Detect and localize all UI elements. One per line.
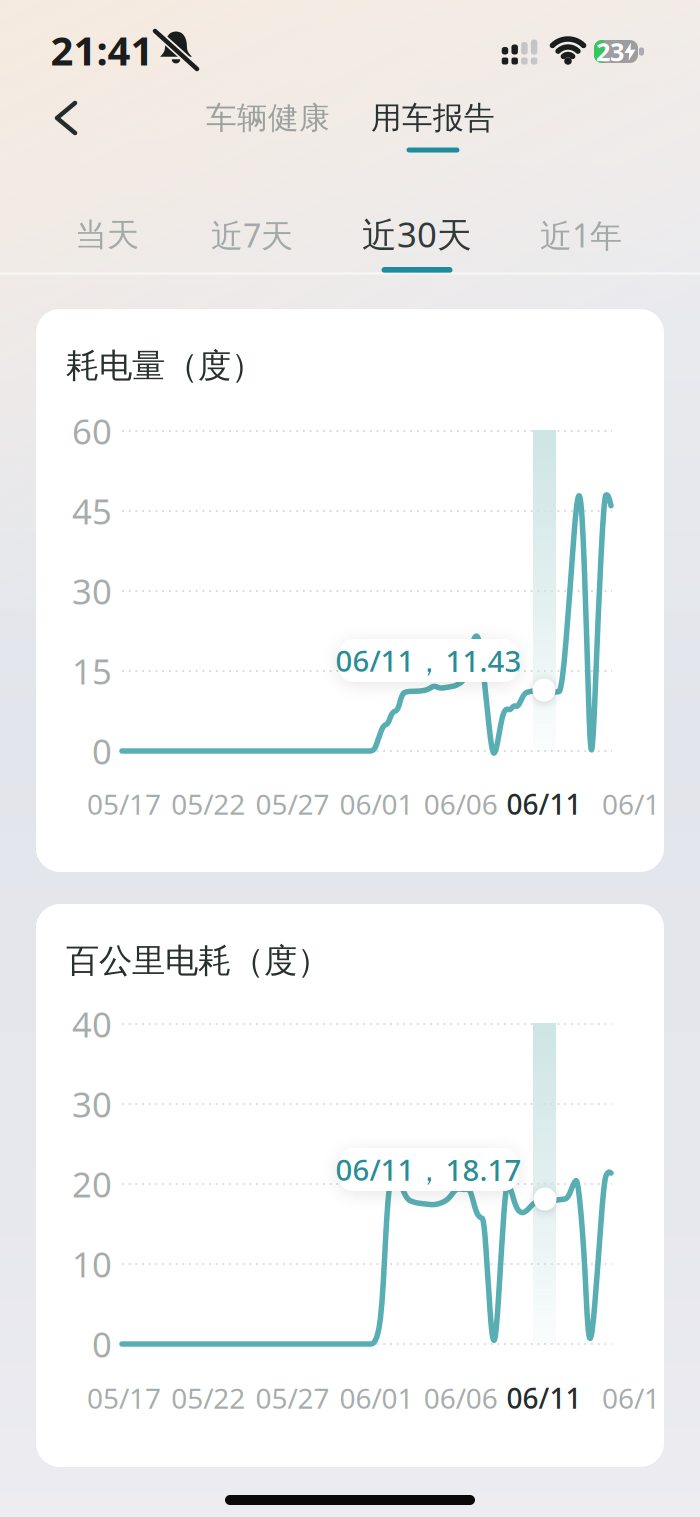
staticText: 05/27 <box>255 785 329 823</box>
button[interactable] <box>43 89 89 147</box>
staticText: 05/27 <box>255 1379 329 1417</box>
staticText: 60 <box>72 408 112 454</box>
staticText: 05/22 <box>171 785 245 823</box>
staticText: 05/17 <box>87 785 161 823</box>
staticText: 百公里电耗（度） <box>66 940 330 981</box>
staticText: 18.17 <box>445 1150 521 1189</box>
staticText: 当天 <box>75 215 139 255</box>
staticText: 11.43 <box>445 641 521 680</box>
button[interactable]: 近7天 <box>203 206 301 264</box>
staticText: 0 <box>92 1321 112 1367</box>
staticText: 近1年 <box>540 214 622 256</box>
button[interactable]: 车辆健康 <box>198 91 338 145</box>
staticText: 0 <box>92 728 112 774</box>
button[interactable]: 用车报告 <box>363 91 503 145</box>
staticText: 06/11， <box>335 641 443 680</box>
staticText: 05/17 <box>87 1379 161 1417</box>
staticText: 用车报告 <box>371 99 495 137</box>
button[interactable]: 当天 <box>67 207 147 263</box>
staticText: 06/11 <box>506 785 581 823</box>
staticText: 15 <box>72 648 112 694</box>
staticText: 06/11 <box>506 1379 581 1417</box>
staticText: 近30天 <box>362 211 472 257</box>
staticText: 10 <box>72 1241 112 1287</box>
staticText: 近7天 <box>211 214 293 256</box>
staticText: 06/15 <box>602 785 676 823</box>
staticText: 06/15 <box>602 1379 676 1417</box>
staticText: 30 <box>72 568 112 614</box>
staticText: 06/06 <box>424 1379 498 1417</box>
staticText: 23 <box>596 35 624 68</box>
button[interactable]: 近1年 <box>532 206 630 264</box>
staticText: 06/01 <box>340 1379 414 1417</box>
button[interactable]: 近30天 <box>354 203 480 265</box>
staticText: 30 <box>72 1081 112 1127</box>
staticText: 20 <box>72 1161 112 1207</box>
staticText: 06/11， <box>335 1150 443 1189</box>
staticText: 05/22 <box>171 1379 245 1417</box>
staticText: 06/06 <box>424 785 498 823</box>
staticText: 06/01 <box>340 785 414 823</box>
staticText: 40 <box>72 1001 112 1047</box>
staticText: 21:41 <box>50 23 153 76</box>
staticText: 45 <box>72 488 112 534</box>
staticText: 耗电量（度） <box>66 345 264 386</box>
staticText: 车辆健康 <box>206 99 330 137</box>
